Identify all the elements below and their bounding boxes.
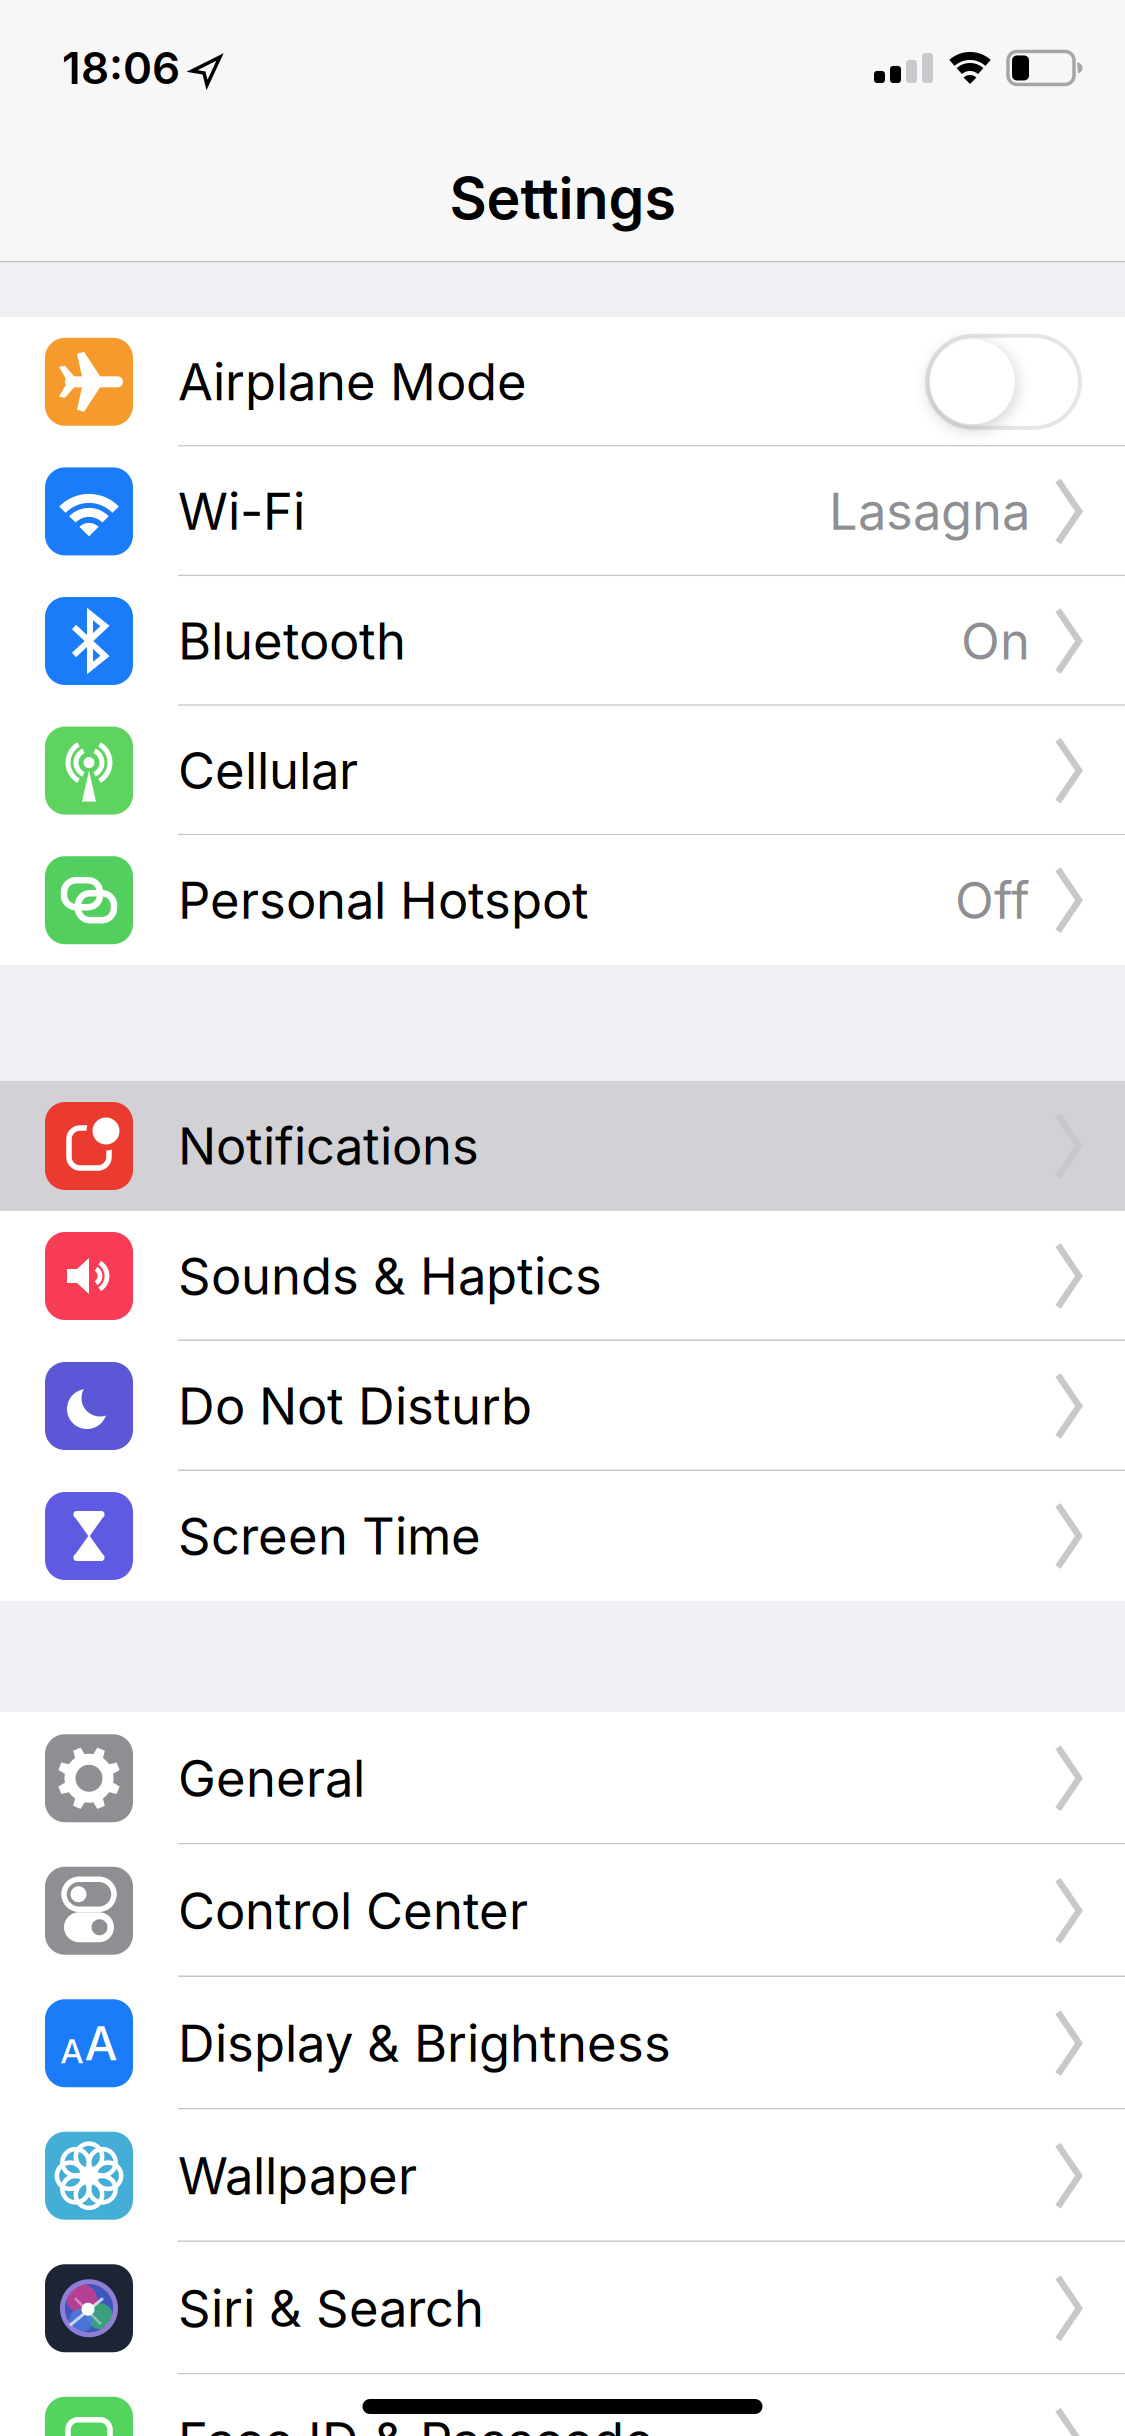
staticText: Settings: [449, 164, 675, 232]
button[interactable]: Airplane Mode: [927, 336, 1080, 428]
staticText: Airplane Mode: [178, 352, 527, 412]
button[interactable]: Face ID & Passcode: [0, 2374, 1125, 2436]
staticText: Display & Brightness: [178, 2013, 671, 2073]
staticText: Screen Time: [178, 1506, 481, 1566]
staticText: A: [84, 2016, 117, 2071]
staticText: Notifications: [178, 1116, 479, 1176]
staticText: General: [178, 1748, 365, 1808]
staticText: Do Not Disturb: [178, 1376, 532, 1436]
button[interactable]: Notifications: [0, 1081, 1125, 1211]
staticText: Wi-Fi: [178, 481, 305, 541]
button[interactable]: Do Not Disturb: [0, 1341, 1125, 1471]
staticText: Face ID & Passcode: [178, 2411, 654, 2436]
staticText: 18:06: [62, 42, 180, 94]
button[interactable]: Siri & Search: [0, 2242, 1125, 2374]
button[interactable]: Control Center: [0, 1844, 1125, 1977]
staticText: Sounds & Haptics: [178, 1246, 602, 1306]
button[interactable]: A: [0, 1977, 1125, 2109]
staticText: Wallpaper: [178, 2146, 417, 2206]
staticText: Cellular: [178, 741, 358, 800]
staticText: A: [60, 2031, 83, 2071]
button[interactable]: Sounds & Haptics: [0, 1211, 1125, 1341]
staticText: Lasagna: [829, 481, 1030, 541]
button[interactable]: Airplane Mode: [0, 317, 1125, 447]
staticText: Bluetooth: [178, 611, 406, 671]
button[interactable]: Cellular: [0, 706, 1125, 835]
button[interactable]: Wallpaper: [0, 2109, 1125, 2242]
button[interactable]: Bluetooth: [0, 576, 1125, 706]
staticText: Siri & Search: [178, 2278, 484, 2338]
button[interactable]: Wi-Fi: [0, 447, 1125, 576]
button[interactable]: Personal Hotspot: [0, 835, 1125, 965]
staticText: Control Center: [178, 1881, 528, 1941]
staticText: On: [961, 611, 1030, 671]
staticText: Off: [955, 870, 1030, 930]
button[interactable]: Screen Time: [0, 1471, 1125, 1601]
button[interactable]: General: [0, 1712, 1125, 1844]
staticText: Personal Hotspot: [178, 870, 589, 930]
